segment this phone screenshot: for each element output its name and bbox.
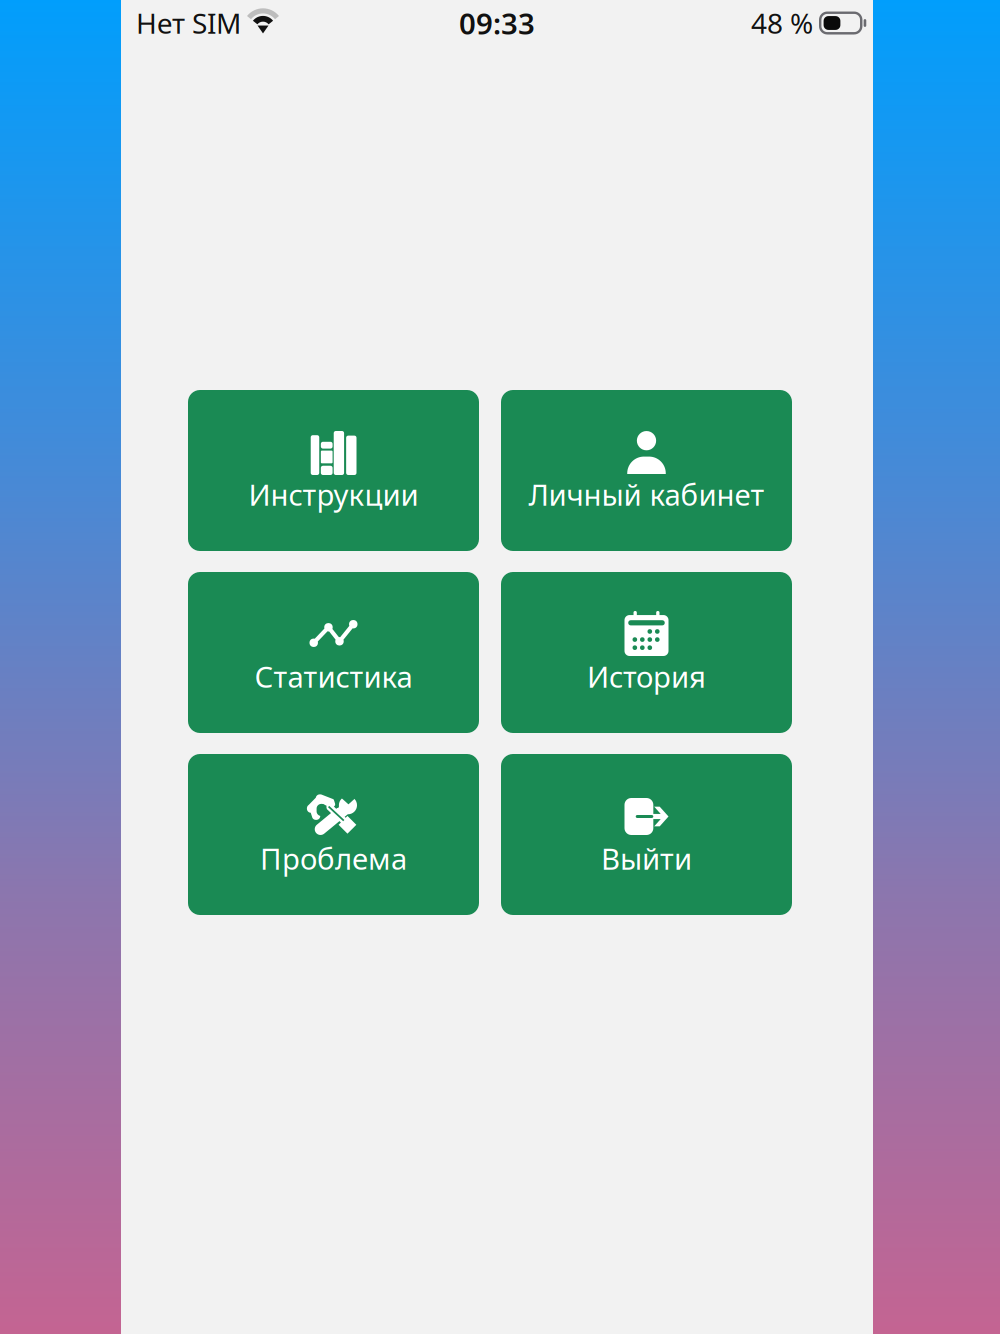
staticText: История [587, 657, 706, 696]
staticText: 48 % [751, 4, 813, 42]
button[interactable]: История [501, 572, 792, 733]
staticText: 09:33 [459, 3, 535, 42]
button[interactable]: Личный кабинет [501, 390, 792, 551]
button[interactable]: Статистика [188, 572, 479, 733]
button[interactable]: Инструкции [188, 390, 479, 551]
staticText: Нет SIM [136, 4, 241, 42]
staticText: Статистика [254, 657, 412, 696]
staticText: Проблема [260, 839, 407, 878]
button[interactable]: Проблема [188, 754, 479, 915]
staticText: Личный кабинет [528, 475, 764, 514]
button[interactable]: Выйти [501, 754, 792, 915]
staticText: Выйти [601, 839, 692, 878]
staticText: Инструкции [248, 475, 418, 514]
